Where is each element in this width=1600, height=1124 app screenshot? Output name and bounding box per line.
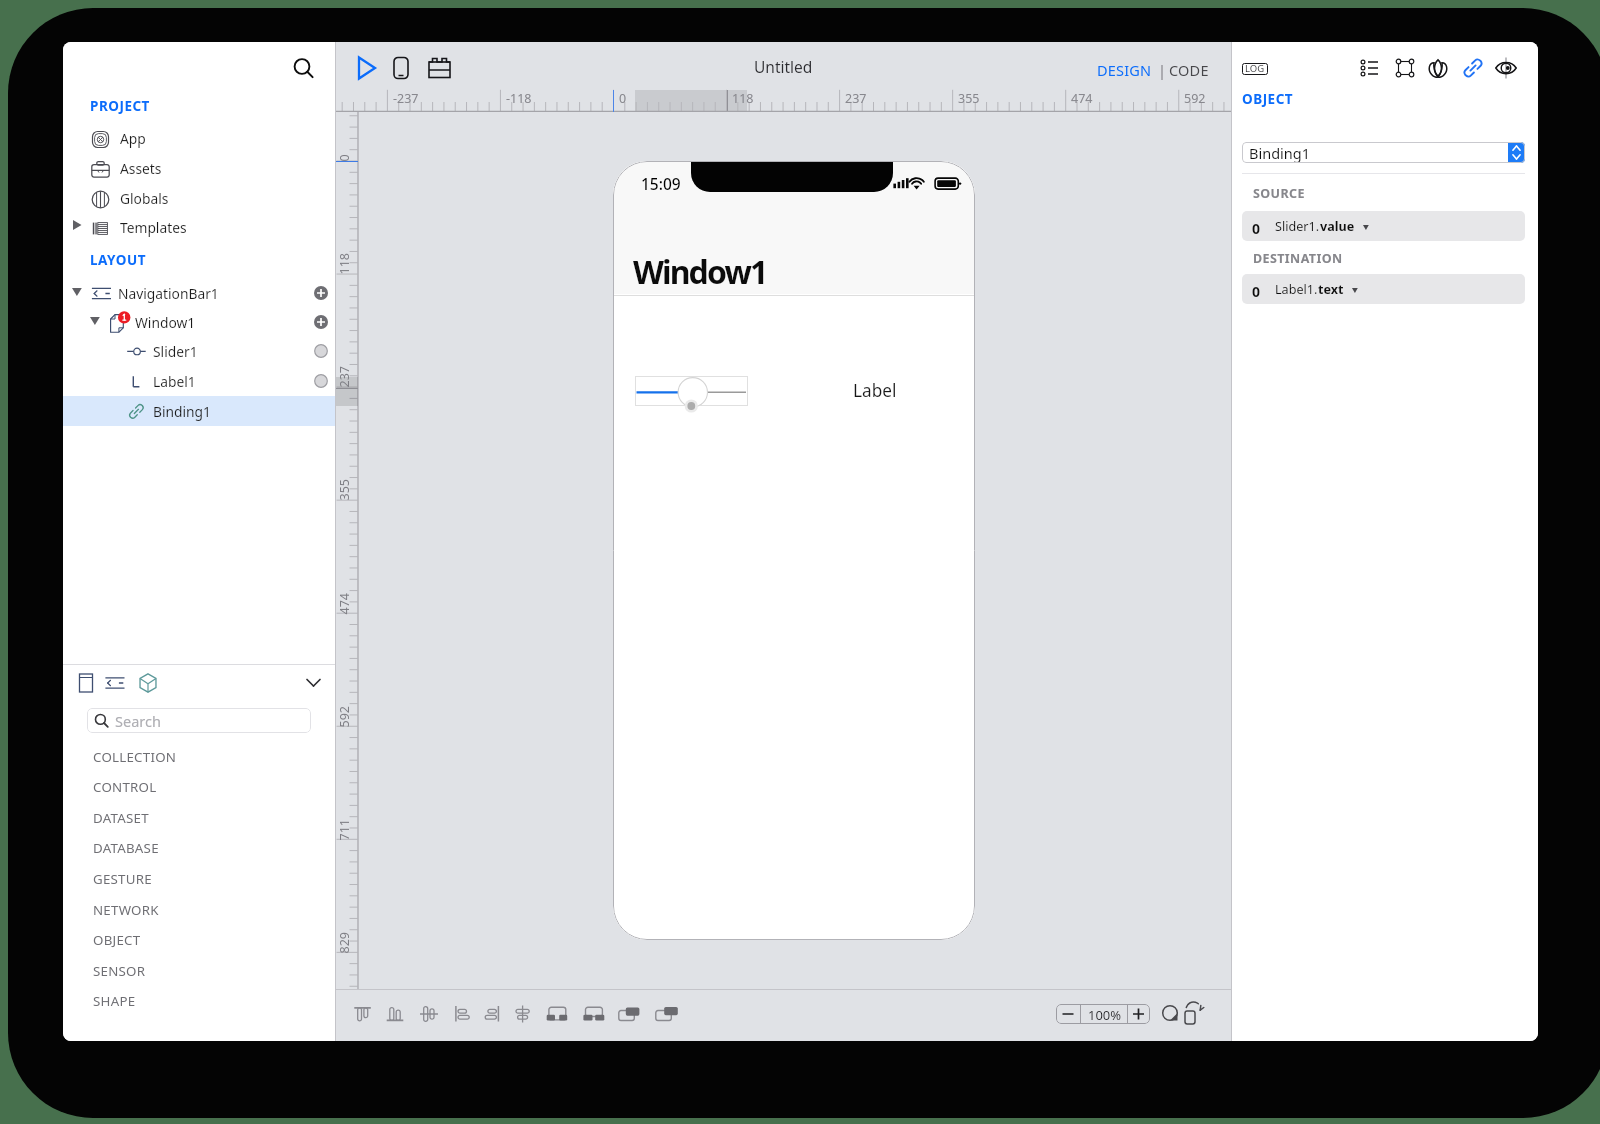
staticText: 118	[335, 252, 352, 274]
button[interactable]: Align right	[479, 1001, 507, 1029]
button[interactable]: Zoom out	[1056, 1004, 1080, 1024]
staticText: Window1	[633, 250, 767, 294]
staticText: COLLECTION	[93, 748, 177, 766]
button[interactable]: Search	[289, 54, 318, 83]
button[interactable]: Properties	[1357, 55, 1383, 81]
button[interactable]: Run	[351, 52, 383, 84]
staticText: LAYOUT	[90, 251, 146, 269]
button[interactable]: Align vertical center	[415, 1001, 443, 1029]
staticText: NETWORK	[93, 901, 159, 919]
staticText: GESTURE	[93, 870, 152, 888]
staticText: DATASET	[93, 809, 149, 827]
staticText: text	[1318, 281, 1344, 298]
button[interactable]: Component	[423, 51, 457, 85]
button[interactable]: COLLECTION	[63, 742, 335, 773]
staticText: 474	[335, 592, 352, 614]
staticText: Window1	[135, 313, 196, 332]
button[interactable]: CODE	[1169, 60, 1209, 80]
staticText: NavigationBar1	[118, 284, 219, 303]
button[interactable]: Templates	[63, 213, 335, 243]
button[interactable]: LOG	[1242, 63, 1268, 75]
staticText: Label1	[153, 372, 196, 391]
button[interactable]: Objects	[134, 669, 162, 697]
staticText: OBJECT	[93, 931, 141, 949]
button[interactable]: SENSOR	[63, 956, 335, 987]
staticText: Slider1	[153, 342, 198, 361]
button[interactable]: App	[63, 124, 335, 154]
button[interactable]: Appearance	[1425, 55, 1451, 81]
button[interactable]: NavigationBar1	[63, 278, 335, 308]
button[interactable]: Comment	[1158, 1001, 1184, 1027]
staticText: Assets	[120, 159, 162, 178]
staticText: DATABASE	[93, 839, 159, 857]
button[interactable]: Distribute	[542, 1001, 570, 1029]
staticText: Binding1	[1249, 143, 1310, 163]
button[interactable]: SHAPE	[63, 986, 335, 1017]
button[interactable]: Align bottom	[381, 1001, 409, 1029]
staticText: 592	[1184, 90, 1206, 107]
button[interactable]: Bindings	[1460, 55, 1486, 81]
button[interactable]: Device	[385, 52, 417, 84]
staticText: Untitled	[754, 56, 813, 77]
button[interactable]: Bring to front	[616, 1001, 644, 1029]
staticText: 15:09	[641, 173, 681, 194]
staticText: 355	[335, 478, 352, 500]
button[interactable]: DATABASE	[63, 833, 335, 864]
staticText: 237	[335, 365, 352, 387]
button[interactable]: Search	[87, 708, 311, 733]
button[interactable]: Assets	[63, 154, 335, 184]
staticText: DESTINATION	[1253, 250, 1343, 267]
staticText: Globals	[120, 189, 169, 208]
staticText: 0	[1252, 282, 1261, 301]
staticText: App	[120, 129, 146, 148]
button[interactable]: Align horizontal center	[509, 1001, 537, 1029]
button[interactable]: 0	[1242, 274, 1525, 304]
staticText: -118	[506, 90, 532, 107]
button[interactable]: Slider1	[63, 336, 335, 366]
button[interactable]: Preview	[1493, 55, 1519, 81]
staticText: Templates	[120, 218, 187, 237]
button[interactable]: Distribute horizontally	[580, 1001, 608, 1029]
button[interactable]: 0	[1242, 211, 1525, 241]
button[interactable]: DATASET	[63, 803, 335, 834]
button[interactable]: Align top	[349, 1001, 377, 1029]
button[interactable]: Rotate	[1181, 1001, 1207, 1027]
button[interactable]	[635, 376, 748, 406]
button[interactable]: Align left	[448, 1001, 476, 1029]
staticText: 711	[335, 818, 352, 840]
button[interactable]: Binding1	[1242, 142, 1525, 163]
staticText: 237	[845, 90, 867, 107]
button[interactable]: Components	[101, 669, 129, 697]
staticText: 0	[619, 90, 627, 107]
button[interactable]: Send to back	[653, 1001, 681, 1029]
staticText: 829	[335, 931, 352, 953]
staticText: Search	[115, 711, 161, 731]
button[interactable]: Label	[853, 379, 897, 402]
button[interactable]: Collapse	[299, 668, 328, 697]
button[interactable]: Zoom in	[1127, 1004, 1150, 1024]
staticText: 474	[1071, 90, 1093, 107]
staticText: CONTROL	[93, 778, 157, 796]
button[interactable]: Layout	[1392, 55, 1418, 81]
staticText: |	[1158, 60, 1166, 80]
staticText: value	[1320, 218, 1355, 235]
staticText: Binding1	[153, 402, 212, 421]
staticText: SHAPE	[93, 992, 136, 1010]
button[interactable]: NETWORK	[63, 895, 335, 926]
staticText: 100%	[1088, 1006, 1122, 1024]
button[interactable]: DESIGN	[1097, 60, 1152, 80]
button[interactable]: Window1	[63, 307, 335, 337]
staticText: SOURCE	[1253, 185, 1305, 202]
button[interactable]: Label1	[63, 366, 335, 396]
staticText: 118	[732, 90, 754, 107]
button[interactable]: GESTURE	[63, 864, 335, 895]
button[interactable]: Pages	[72, 669, 100, 697]
button[interactable]: Binding1	[63, 396, 335, 426]
button[interactable]: OBJECT	[63, 925, 335, 956]
button[interactable]: Globals	[63, 184, 335, 214]
staticText: Label1.	[1275, 281, 1318, 298]
staticText: OBJECT	[1242, 90, 1294, 108]
staticText: -237	[393, 90, 419, 107]
button[interactable]: CONTROL	[63, 772, 335, 803]
staticText: Slider1.	[1275, 218, 1320, 235]
